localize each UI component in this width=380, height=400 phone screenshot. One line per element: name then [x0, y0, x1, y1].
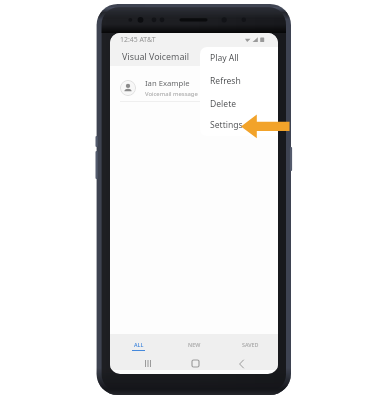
- button[interactable]: Settings: [200, 116, 278, 136]
- staticText: Ian Example: [145, 78, 190, 88]
- button[interactable]: SAVED: [222, 334, 278, 353]
- button[interactable]: Ian Example: [110, 66, 278, 101]
- staticText: Visual Voicemail: [122, 50, 189, 62]
- button[interactable]: ALL: [110, 334, 166, 353]
- staticText: Delete: [210, 98, 237, 110]
- staticText: NEW: [188, 341, 201, 348]
- staticText: Settings: [210, 119, 243, 131]
- staticText: 12:45 AT&T: [120, 35, 156, 44]
- button[interactable]: Back: [225, 353, 257, 370]
- staticText: Refresh: [210, 75, 241, 87]
- button[interactable]: Recent apps: [132, 353, 164, 370]
- staticText: Voicemail message: [145, 90, 198, 98]
- button[interactable]: Play All: [200, 47, 278, 70]
- button[interactable]: Home: [179, 353, 211, 370]
- staticText: SAVED: [242, 341, 259, 348]
- button[interactable]: NEW: [166, 334, 222, 353]
- button[interactable]: Refresh: [200, 70, 278, 93]
- staticText: ALL: [134, 341, 144, 348]
- button[interactable]: Delete: [200, 93, 278, 116]
- staticText: Play All: [210, 52, 239, 64]
